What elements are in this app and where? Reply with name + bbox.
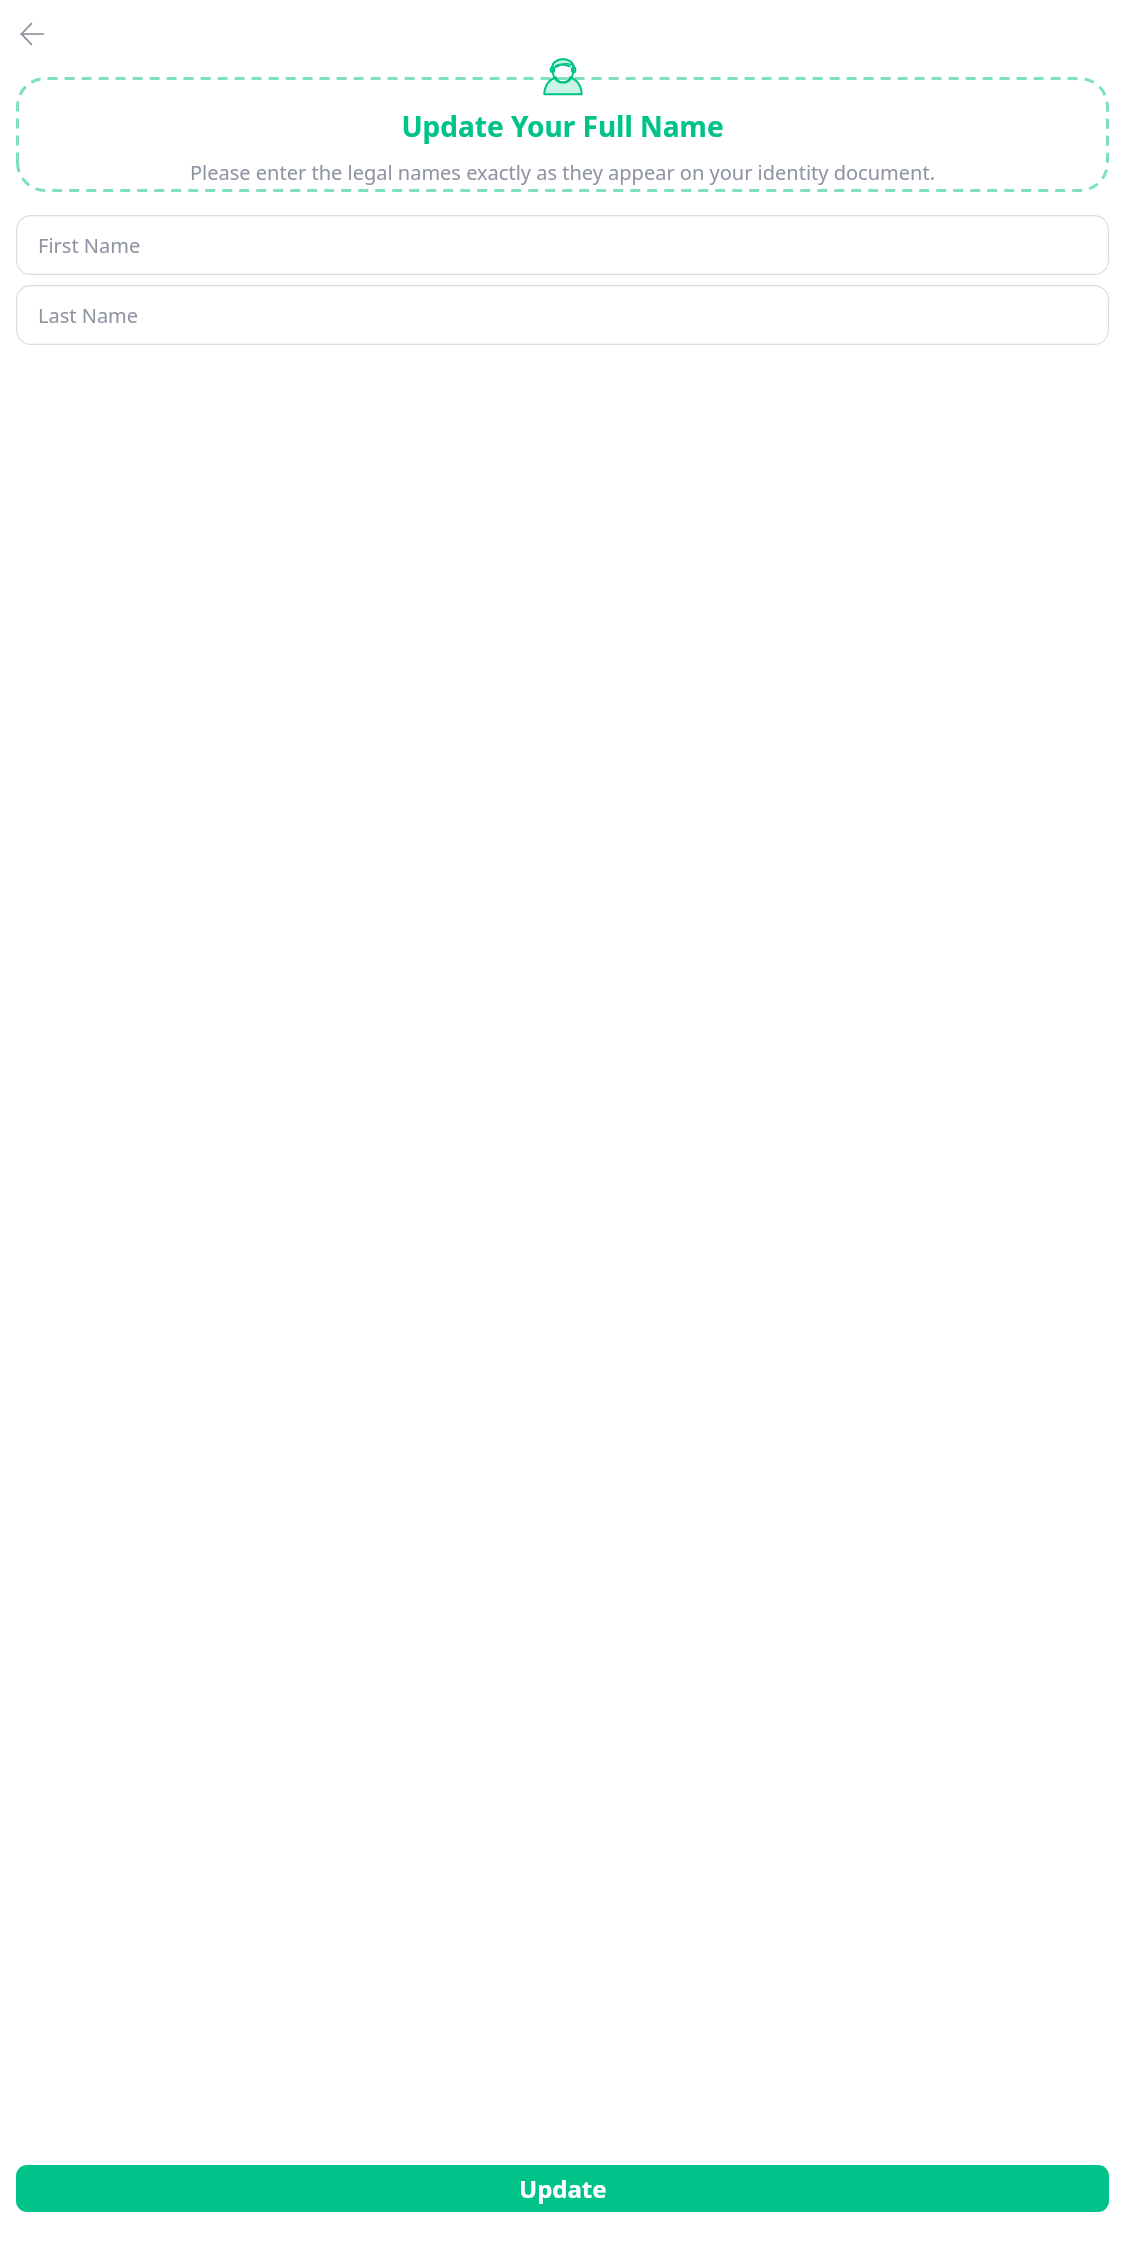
staticText: First Name [38, 232, 141, 259]
staticText: Please enter the legal names exactly as … [42, 159, 1083, 186]
button[interactable]: Last Name [16, 285, 1109, 345]
button[interactable]: First Name [16, 215, 1109, 275]
button[interactable]: Back [4, 6, 60, 62]
staticText: Update [519, 2172, 607, 2205]
staticText: Update Your Full Name [24, 107, 1101, 145]
button[interactable]: Update [16, 2165, 1109, 2212]
staticText: Last Name [38, 302, 139, 329]
